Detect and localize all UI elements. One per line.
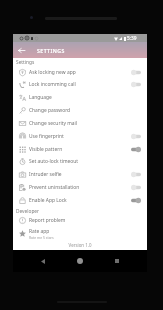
button[interactable]: Ask locking new app bbox=[13, 66, 147, 79]
button[interactable]: Toggle bbox=[131, 170, 141, 179]
button[interactable]: Toggle bbox=[131, 68, 141, 77]
button[interactable]: Change password bbox=[13, 104, 147, 117]
button[interactable]: Enable App Lock bbox=[13, 194, 147, 207]
staticText: Set auto-lock timeout bbox=[29, 158, 79, 165]
staticText: 5:39 bbox=[127, 35, 137, 42]
button[interactable]: Back bbox=[34, 252, 52, 270]
button[interactable]: Use fingerprint bbox=[13, 130, 147, 143]
staticText: Rate me 5 stars bbox=[29, 235, 54, 240]
button[interactable]: Visible pattern bbox=[13, 143, 147, 156]
staticText: Rate app bbox=[29, 228, 50, 235]
staticText: Change security mail bbox=[29, 120, 78, 127]
button[interactable]: Back bbox=[13, 42, 29, 58]
button[interactable]: Home bbox=[71, 252, 89, 270]
staticText: Ask locking new app bbox=[29, 69, 76, 76]
staticText: Use fingerprint bbox=[29, 133, 64, 140]
staticText: SETTINGS bbox=[37, 47, 65, 54]
button[interactable]: Toggle bbox=[131, 80, 141, 89]
button[interactable]: Recents bbox=[108, 252, 126, 270]
button[interactable]: Change security mail bbox=[13, 117, 147, 130]
staticText: Version 1.0 bbox=[13, 242, 147, 248]
staticText: Visible pattern bbox=[29, 146, 63, 153]
staticText: Language bbox=[29, 94, 52, 101]
button[interactable]: Toggle bbox=[131, 196, 141, 205]
button[interactable]: Toggle bbox=[131, 145, 141, 154]
staticText: Developer bbox=[16, 208, 40, 215]
button[interactable]: Toggle bbox=[131, 183, 141, 192]
button[interactable]: Set auto-lock timeout bbox=[13, 155, 147, 168]
button[interactable]: Prevent uninstallation bbox=[13, 181, 147, 194]
button[interactable]: Toggle bbox=[131, 132, 141, 141]
staticText: Change password bbox=[29, 107, 71, 114]
button[interactable]: Report problem bbox=[13, 214, 147, 227]
button[interactable]: Rate app bbox=[13, 227, 147, 240]
staticText: Lock incomming call bbox=[29, 81, 76, 88]
button[interactable]: Lock incomming call bbox=[13, 78, 147, 91]
button[interactable]: Language bbox=[13, 91, 147, 104]
staticText: Intruder selfie bbox=[29, 171, 62, 178]
staticText: Enable App Lock bbox=[29, 197, 67, 204]
button[interactable]: Intruder selfie bbox=[13, 168, 147, 181]
staticText: Prevent uninstallation bbox=[29, 184, 80, 191]
staticText: Report problem bbox=[29, 217, 66, 224]
staticText: Settings bbox=[16, 59, 35, 66]
